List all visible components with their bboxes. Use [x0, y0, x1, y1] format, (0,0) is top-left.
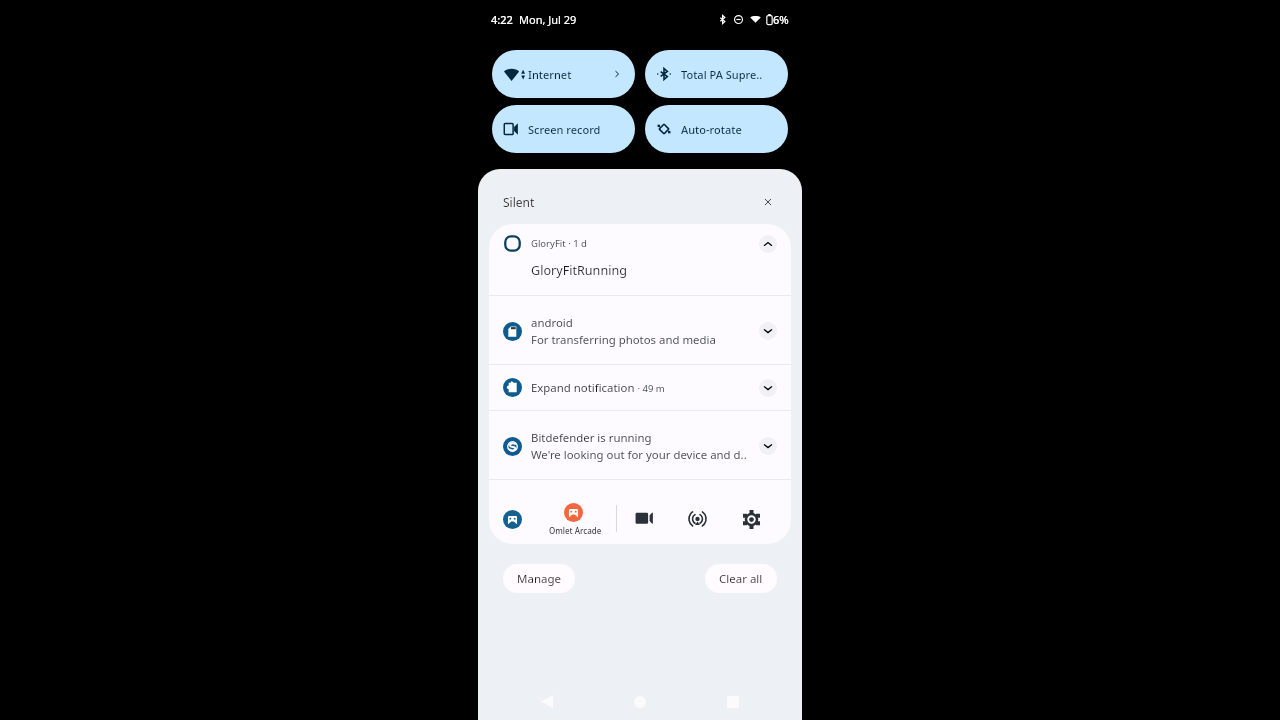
- button[interactable]: android: [489, 296, 791, 364]
- button[interactable]: Screen record: [492, 105, 635, 153]
- staticText: 4:22: [491, 12, 513, 27]
- staticText: Mon, Jul 29: [519, 12, 577, 27]
- button[interactable]: Total PA Supre..: [645, 50, 788, 98]
- button[interactable]: Manage: [503, 564, 575, 593]
- button[interactable]: Back: [534, 689, 559, 714]
- staticText: Internet: [528, 67, 572, 82]
- staticText: Clear all: [719, 571, 763, 587]
- staticText: Expand notification: [531, 380, 635, 396]
- button[interactable]: Expand: [759, 437, 777, 455]
- staticText: GloryFit · 1 d: [531, 237, 587, 250]
- staticText: For transferring photos and media: [531, 332, 716, 348]
- button[interactable]: Expand: [759, 379, 777, 397]
- button[interactable]: Clear all: [705, 564, 777, 593]
- button[interactable]: Home: [627, 689, 652, 714]
- button[interactable]: Auto-rotate: [645, 105, 788, 153]
- button[interactable]: Expand notification: [489, 365, 791, 410]
- staticText: GloryFitRunning: [531, 262, 627, 279]
- button[interactable]: Game: [503, 510, 522, 529]
- staticText: Bitdefender is running: [531, 430, 652, 446]
- staticText: Auto-rotate: [681, 122, 742, 137]
- staticText: Omlet Arcade: [549, 525, 602, 536]
- staticText: Total PA Supre..: [681, 67, 763, 82]
- button[interactable]: Expand: [759, 322, 777, 340]
- staticText: android: [531, 315, 573, 331]
- button[interactable]: Settings: [742, 510, 761, 529]
- button[interactable]: Broadcast: [688, 510, 707, 529]
- staticText: We're looking out for your device and d.…: [531, 447, 747, 463]
- button[interactable]: Recents: [720, 689, 745, 714]
- staticText: Silent: [503, 194, 535, 210]
- button[interactable]: Record video: [635, 507, 654, 526]
- staticText: 6%: [773, 12, 789, 27]
- button[interactable]: GloryFit · 1 d: [489, 224, 791, 295]
- staticText: · 49 m: [635, 382, 665, 395]
- button[interactable]: Collapse: [759, 235, 777, 253]
- staticText: Screen record: [528, 122, 601, 137]
- button[interactable]: Internet: [492, 50, 635, 98]
- button[interactable]: Omlet Arcade: [564, 503, 583, 522]
- button[interactable]: Close: [757, 191, 779, 213]
- staticText: Manage: [517, 571, 561, 587]
- button[interactable]: Bitdefender is running: [489, 411, 791, 479]
